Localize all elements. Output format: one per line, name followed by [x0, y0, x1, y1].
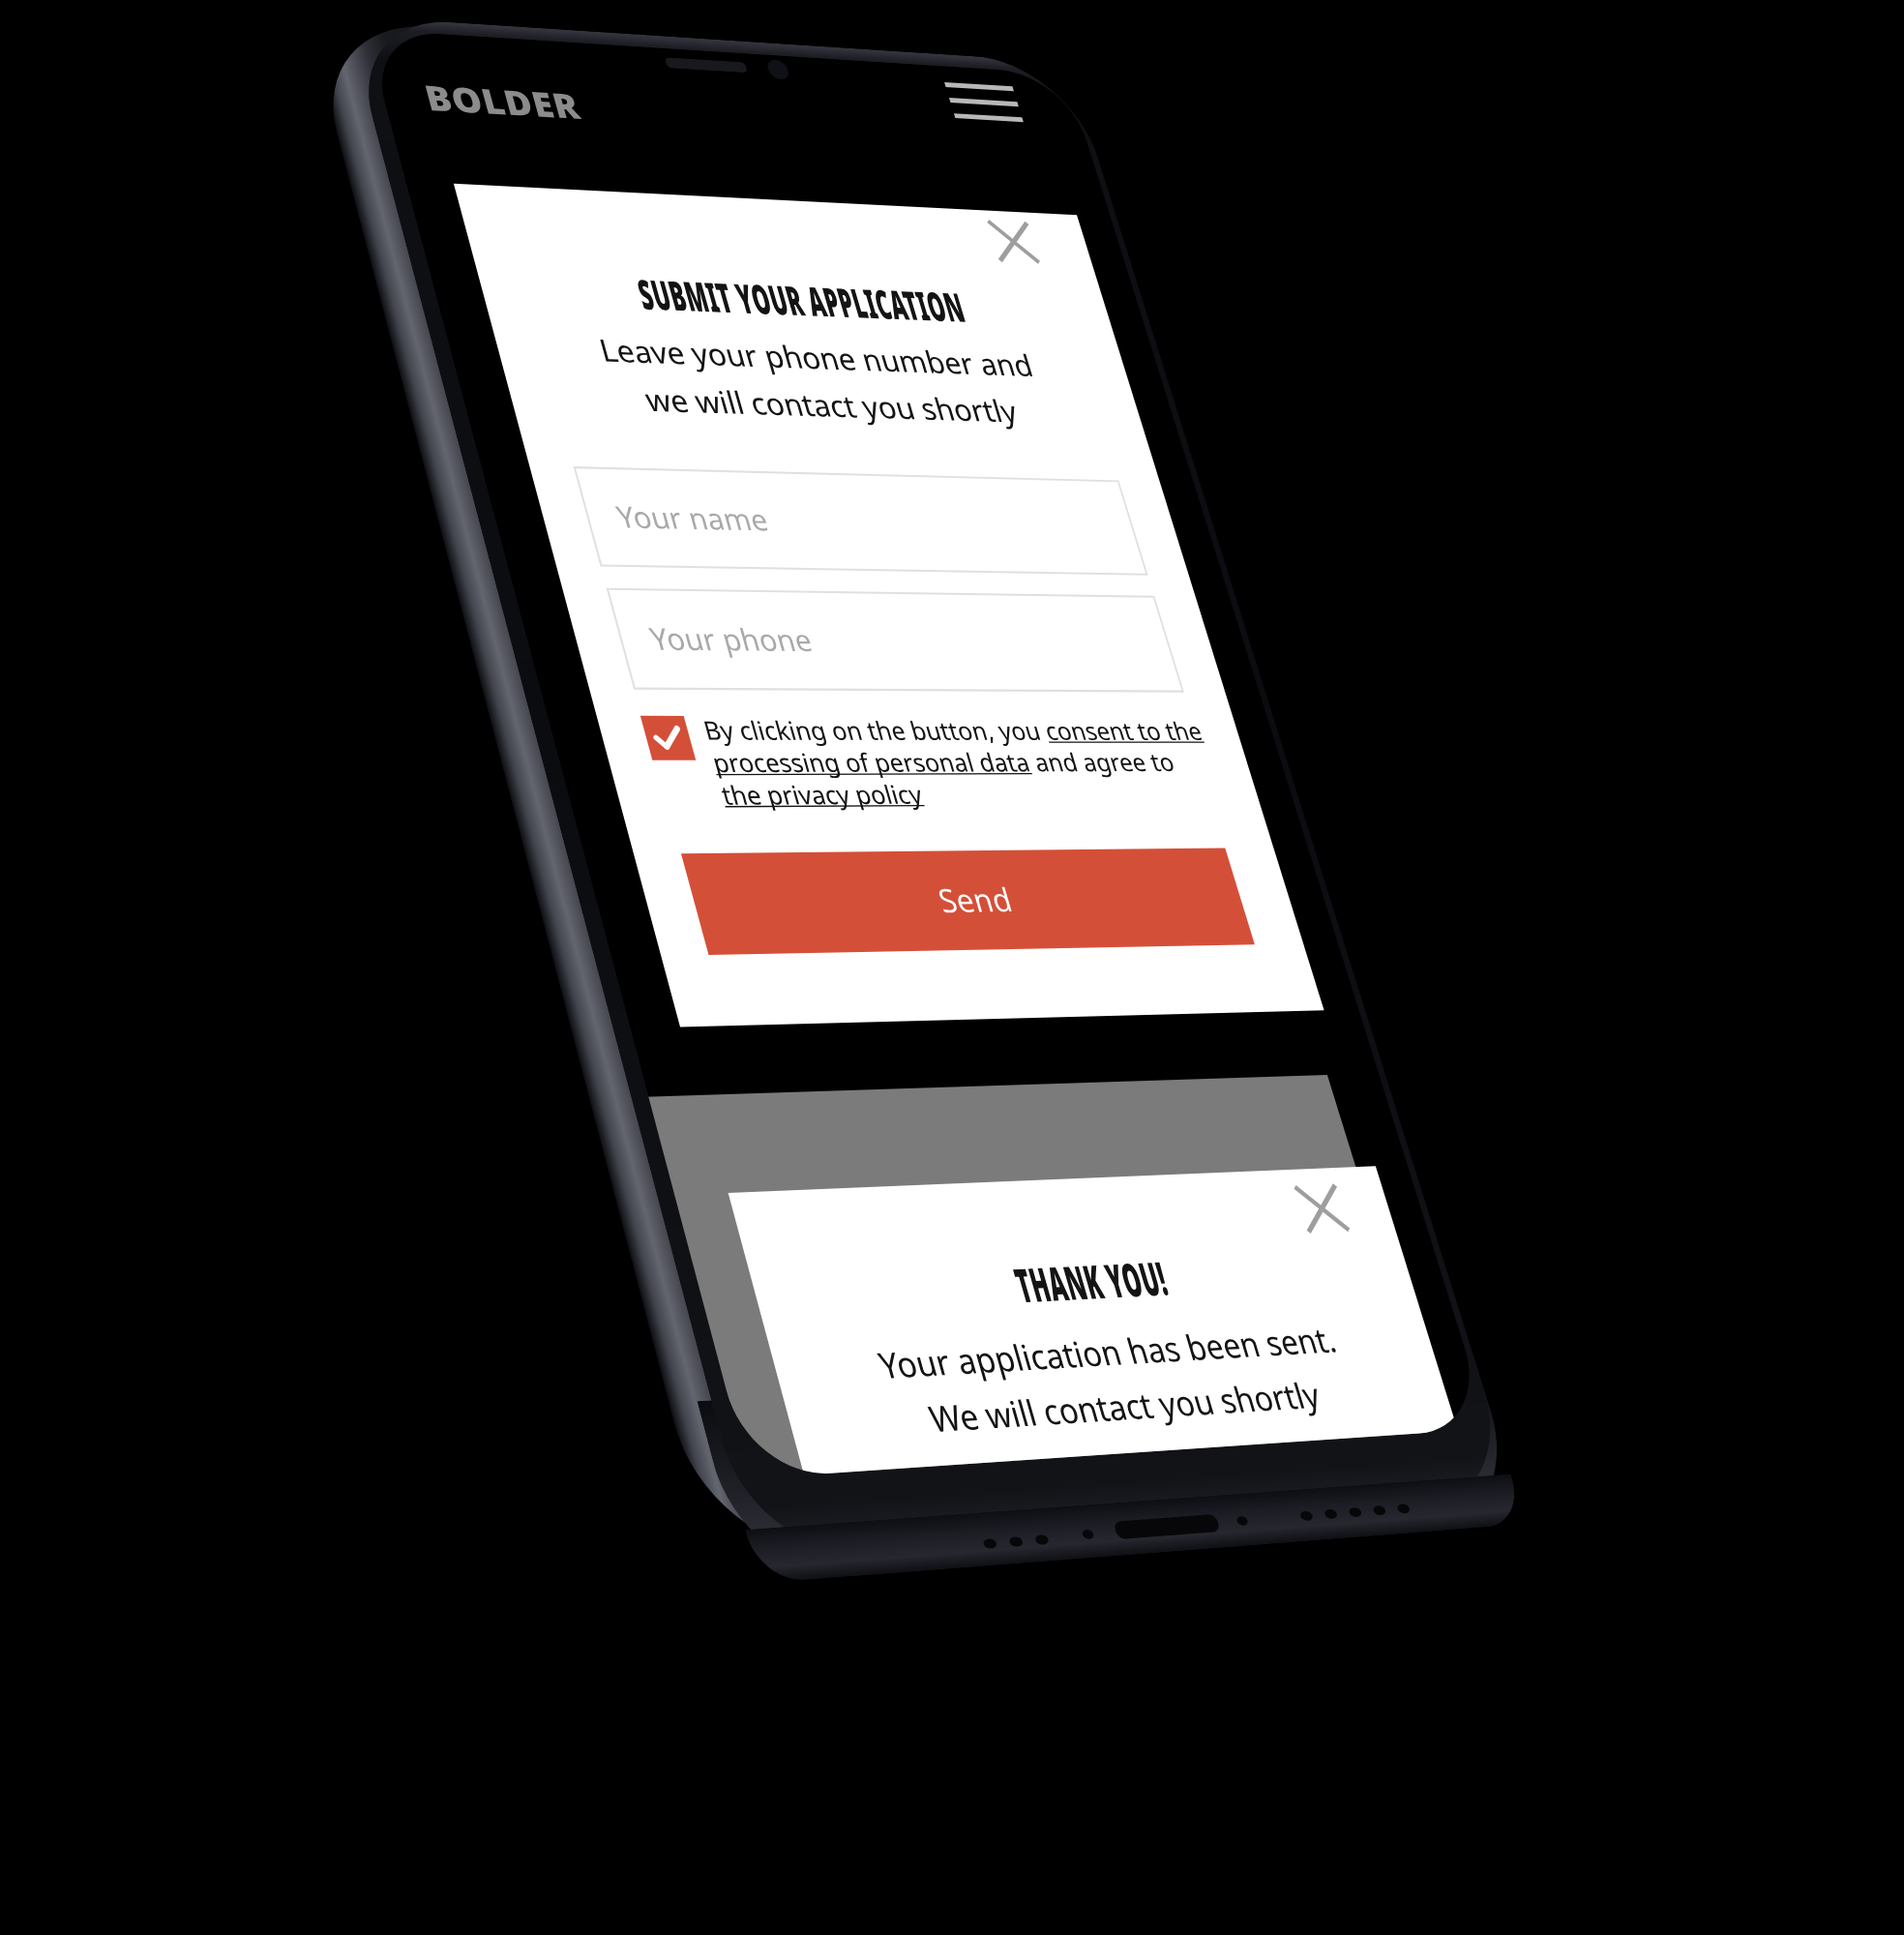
button[interactable]: Your name [574, 467, 1147, 574]
button[interactable]: Consent checkbox, checked [640, 716, 696, 760]
staticText: BOLDER [419, 72, 585, 128]
staticText: Leave your phone number and we will cont… [492, 325, 1145, 434]
staticText: SUBMIT YOUR APPLICATION [619, 265, 982, 334]
button[interactable]: Close [1287, 1178, 1357, 1239]
staticText: Your phone [645, 618, 817, 661]
button[interactable]: Open menu [944, 81, 1024, 124]
staticText: Your name [612, 496, 773, 541]
staticText: By clicking on the button, you consent t… [699, 713, 1228, 812]
staticText: Send [933, 877, 1017, 923]
button[interactable]: Close [980, 215, 1047, 269]
button[interactable]: Your phone [607, 589, 1183, 691]
staticText: Your application has been sent. We will … [770, 1311, 1451, 1450]
staticText: THANK YOU! [899, 1241, 1278, 1321]
button[interactable]: Send [681, 848, 1255, 955]
